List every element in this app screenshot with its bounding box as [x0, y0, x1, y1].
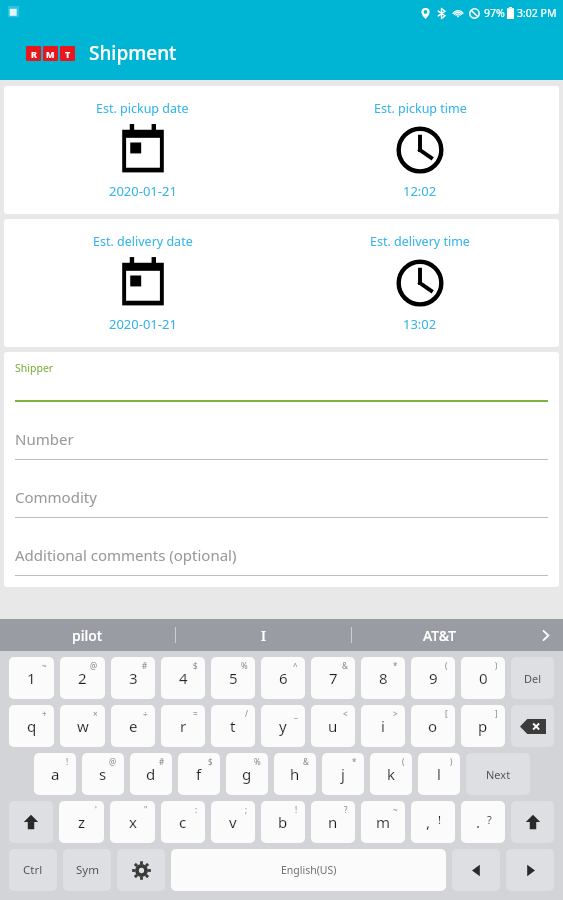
button[interactable]: s [82, 753, 124, 795]
staticText: 5 [229, 668, 238, 688]
button[interactable]: Est. pickup date [4, 98, 281, 202]
staticText: > [393, 708, 398, 719]
button[interactable]: 2 [60, 657, 105, 699]
button[interactable]: Next [466, 753, 530, 795]
button[interactable]: AT&T [352, 619, 527, 651]
button[interactable]: g [226, 753, 268, 795]
staticText: Shipper [15, 361, 54, 375]
staticText: , [426, 812, 431, 832]
button[interactable]: 1 [9, 657, 54, 699]
other: Calendar [117, 256, 169, 308]
staticText: ! [438, 812, 441, 827]
button[interactable]: 7 [311, 657, 355, 699]
button[interactable]: 5 [211, 657, 255, 699]
staticText: : [195, 804, 198, 815]
button[interactable]: x [110, 801, 155, 843]
button[interactable]: 4 [161, 657, 205, 699]
button[interactable]: p [461, 705, 505, 747]
staticText: # [159, 756, 165, 767]
button[interactable]: Shift [511, 801, 554, 843]
staticText: 0 [479, 668, 488, 688]
staticText: ~ [42, 660, 47, 671]
button[interactable]: English(US) [171, 849, 446, 891]
button[interactable]: 6 [261, 657, 305, 699]
button[interactable]: Left [452, 849, 500, 891]
button[interactable]: f [178, 753, 220, 795]
button[interactable]: Sym [63, 849, 111, 891]
button[interactable]: I [176, 619, 351, 651]
staticText: y [279, 716, 287, 736]
button[interactable]: Shift [9, 801, 53, 843]
staticText: Next [486, 767, 511, 782]
button[interactable]: h [274, 753, 316, 795]
staticText: m [376, 812, 391, 832]
button[interactable]: y [261, 705, 305, 747]
button[interactable]: Additional comments (optional) [15, 518, 548, 576]
staticText: g [242, 764, 252, 784]
button[interactable]: pilot [0, 619, 175, 651]
staticText: z [78, 812, 86, 832]
staticText: ? [487, 812, 492, 827]
button[interactable]: d [130, 753, 172, 795]
button[interactable]: . [461, 801, 505, 843]
staticText: b [278, 812, 288, 832]
staticText: $ [193, 660, 198, 671]
staticText: < [343, 708, 348, 719]
staticText: 13:02 [403, 315, 437, 333]
button[interactable]: Number [15, 402, 548, 460]
button[interactable]: k [370, 753, 412, 795]
button[interactable]: t [211, 705, 255, 747]
button[interactable]: l [418, 753, 460, 795]
staticText: Est. delivery date [93, 233, 193, 250]
staticText: @ [109, 756, 117, 767]
other: Clock [394, 123, 446, 175]
button[interactable]: r [161, 705, 205, 747]
button[interactable]: b [261, 801, 305, 843]
staticText: w [77, 716, 89, 736]
button[interactable]: Est. delivery time [281, 231, 559, 335]
staticText: $ [208, 756, 213, 767]
button[interactable]: , [411, 801, 455, 843]
button[interactable]: More suggestions [527, 619, 563, 651]
other: Calendar [117, 123, 169, 175]
button[interactable]: o [411, 705, 455, 747]
button[interactable]: v [211, 801, 255, 843]
button[interactable]: Commodity [15, 460, 548, 518]
button[interactable]: m [361, 801, 405, 843]
button[interactable]: Shipper [15, 352, 548, 402]
button[interactable]: i [361, 705, 405, 747]
staticText: ~ [393, 804, 398, 815]
staticText: 4 [179, 668, 188, 688]
staticText: 9 [429, 668, 438, 688]
button[interactable]: Est. delivery date [4, 231, 281, 335]
staticText: p [478, 716, 488, 736]
button[interactable]: Del [511, 657, 554, 699]
staticText: v [229, 812, 237, 832]
button[interactable]: Est. pickup time [281, 98, 559, 202]
button[interactable]: u [311, 705, 355, 747]
staticText: ) [450, 756, 453, 767]
staticText: ^ [293, 660, 298, 671]
button[interactable]: j [322, 753, 364, 795]
button[interactable]: 0 [461, 657, 505, 699]
staticText: ? [344, 804, 348, 815]
staticText: 97% [484, 6, 505, 20]
button[interactable]: Keyboard settings [117, 849, 165, 891]
button[interactable]: 9 [411, 657, 455, 699]
button[interactable]: n [311, 801, 355, 843]
button[interactable]: c [161, 801, 205, 843]
staticText: a [51, 764, 60, 784]
staticText: Shipment [89, 40, 177, 66]
button[interactable]: Backspace [511, 705, 554, 747]
button[interactable]: q [9, 705, 54, 747]
button[interactable]: Ctrl [9, 849, 57, 891]
button[interactable]: e [111, 705, 155, 747]
button[interactable]: w [60, 705, 105, 747]
staticText: x [129, 812, 137, 832]
button[interactable]: z [59, 801, 104, 843]
staticText: o [428, 716, 438, 736]
button[interactable]: Right [506, 849, 554, 891]
button[interactable]: 8 [361, 657, 405, 699]
button[interactable]: a [34, 753, 76, 795]
button[interactable]: 3 [111, 657, 155, 699]
